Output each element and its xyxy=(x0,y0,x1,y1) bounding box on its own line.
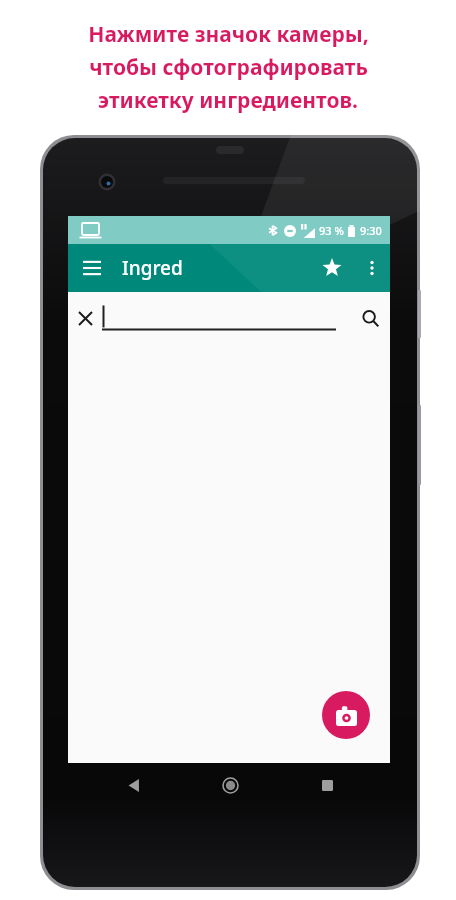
staticText: Ingred xyxy=(122,255,183,281)
staticText: этикетку ингредиентов. xyxy=(98,86,358,115)
button[interactable]: Menu xyxy=(68,244,116,292)
staticText: 93 % xyxy=(319,223,344,238)
button[interactable]: Search xyxy=(350,298,390,338)
button[interactable]: Recents xyxy=(279,763,376,807)
button[interactable]: Home xyxy=(182,763,279,807)
button[interactable]: Back xyxy=(84,763,182,807)
button[interactable]: Take photo xyxy=(322,691,370,739)
button[interactable]: Clear xyxy=(68,301,102,335)
staticText: чтобы сфотографировать xyxy=(89,53,368,82)
button[interactable]: Favorites xyxy=(310,246,354,290)
button[interactable]: More options xyxy=(354,250,390,286)
staticText: Нажмите значок камеры, xyxy=(88,20,369,49)
staticText: 9:30 xyxy=(360,223,382,238)
